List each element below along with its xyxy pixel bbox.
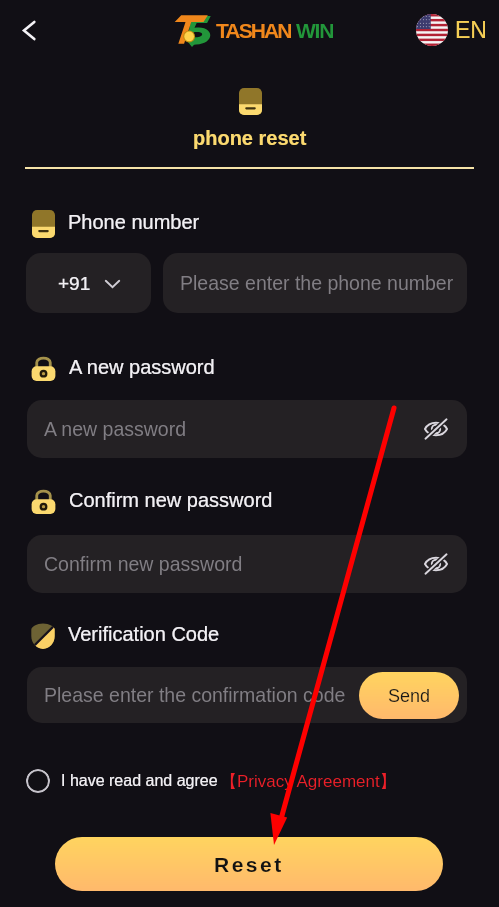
staticText: Send (388, 686, 431, 706)
staticText: A new password (44, 418, 186, 440)
staticText: Confirm new password (44, 553, 243, 575)
button[interactable]: Send (359, 672, 459, 719)
staticText: phone reset (193, 127, 307, 149)
button[interactable]: I have read and agree (26, 769, 397, 793)
staticText: +91 (58, 273, 91, 294)
button[interactable]: Back (8, 9, 50, 51)
staticText: TASHAN (216, 19, 291, 42)
staticText: Phone number (68, 211, 200, 233)
staticText: Confirm new password (69, 489, 273, 511)
button[interactable]: Show password (421, 549, 451, 579)
staticText: EN (455, 17, 487, 43)
staticText: Reset (214, 853, 284, 876)
staticText: Please enter the confirmation code (44, 684, 346, 706)
button[interactable]: +91 (26, 253, 151, 313)
staticText: Verification Code (68, 623, 220, 645)
staticText: I have read and agree (61, 772, 218, 790)
button[interactable]: Please enter the phone number (163, 253, 467, 313)
staticText: 【Privacy Agreement】 (220, 771, 397, 792)
button[interactable]: Reset (55, 837, 443, 891)
button[interactable]: A new password (27, 400, 467, 458)
staticText: Please enter the phone number (180, 272, 454, 294)
button[interactable]: Show password (421, 414, 451, 444)
staticText: A new password (69, 356, 215, 378)
button[interactable]: EN (416, 14, 487, 46)
button[interactable]: Confirm new password (27, 535, 467, 593)
staticText: WIN (296, 19, 334, 42)
